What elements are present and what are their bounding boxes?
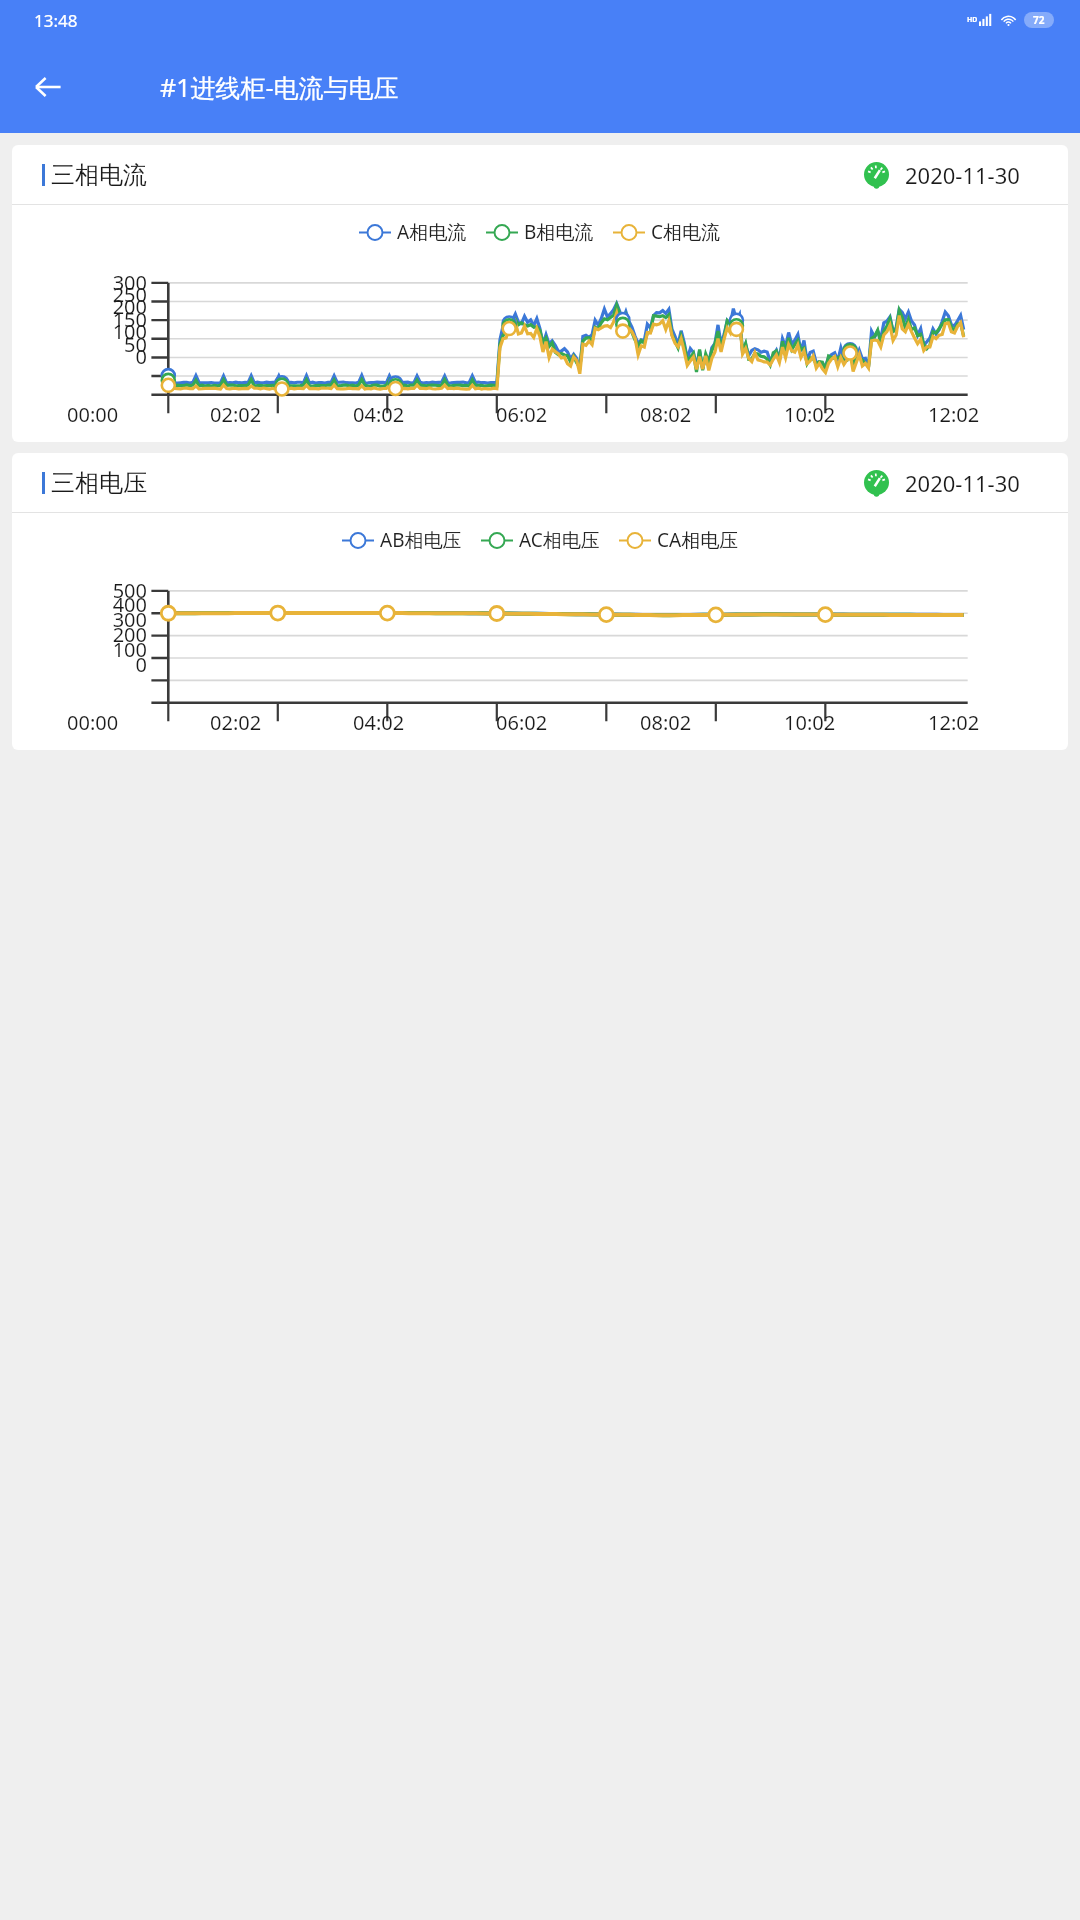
staticText: 500 — [12, 577, 147, 604]
staticText: 00:00 — [67, 709, 119, 736]
staticText: 0 — [12, 651, 147, 678]
staticText: C相电流 — [651, 219, 721, 245]
staticText: 50 — [12, 331, 147, 358]
staticText: 04:02 — [353, 401, 405, 428]
staticText: 300 — [12, 269, 147, 296]
staticText: 200 — [12, 293, 147, 320]
staticText: 72 — [1033, 13, 1045, 27]
staticText: 02:02 — [210, 709, 262, 736]
staticText: 00:00 — [67, 401, 119, 428]
staticText: 02:02 — [210, 401, 262, 428]
staticText: 100 — [12, 318, 147, 345]
staticText: 12:02 — [928, 709, 980, 736]
button[interactable]: Back — [20, 59, 76, 115]
staticText: 06:02 — [496, 401, 548, 428]
staticText: 三相电压 — [51, 468, 147, 498]
button[interactable]: 三相电压 — [12, 453, 1068, 750]
staticText: A相电流 — [397, 219, 467, 245]
staticText: 10:02 — [784, 401, 836, 428]
staticText: B相电流 — [524, 219, 594, 245]
staticText: HD — [967, 15, 978, 25]
staticText: 2020-11-30 — [905, 160, 1020, 190]
staticText: 0 — [12, 343, 147, 370]
staticText: 200 — [12, 621, 147, 648]
staticText: 100 — [12, 636, 147, 663]
staticText: 400 — [12, 591, 147, 618]
staticText: CA相电压 — [657, 527, 739, 553]
staticText: 13:48 — [34, 9, 78, 32]
staticText: 150 — [12, 306, 147, 333]
staticText: 250 — [12, 281, 147, 308]
staticText: 08:02 — [640, 401, 692, 428]
staticText: 12:02 — [928, 401, 980, 428]
staticText: #1进线柜-电流与电压 — [160, 70, 399, 104]
staticText: 300 — [12, 606, 147, 633]
staticText: 10:02 — [784, 709, 836, 736]
staticText: 06:02 — [496, 709, 548, 736]
staticText: 08:02 — [640, 709, 692, 736]
button[interactable]: 三相电流 — [12, 145, 1068, 442]
staticText: AC相电压 — [519, 527, 600, 553]
staticText: 2020-11-30 — [905, 468, 1020, 498]
staticText: AB相电压 — [380, 527, 462, 553]
staticText: 三相电流 — [51, 160, 147, 190]
staticText: 04:02 — [353, 709, 405, 736]
